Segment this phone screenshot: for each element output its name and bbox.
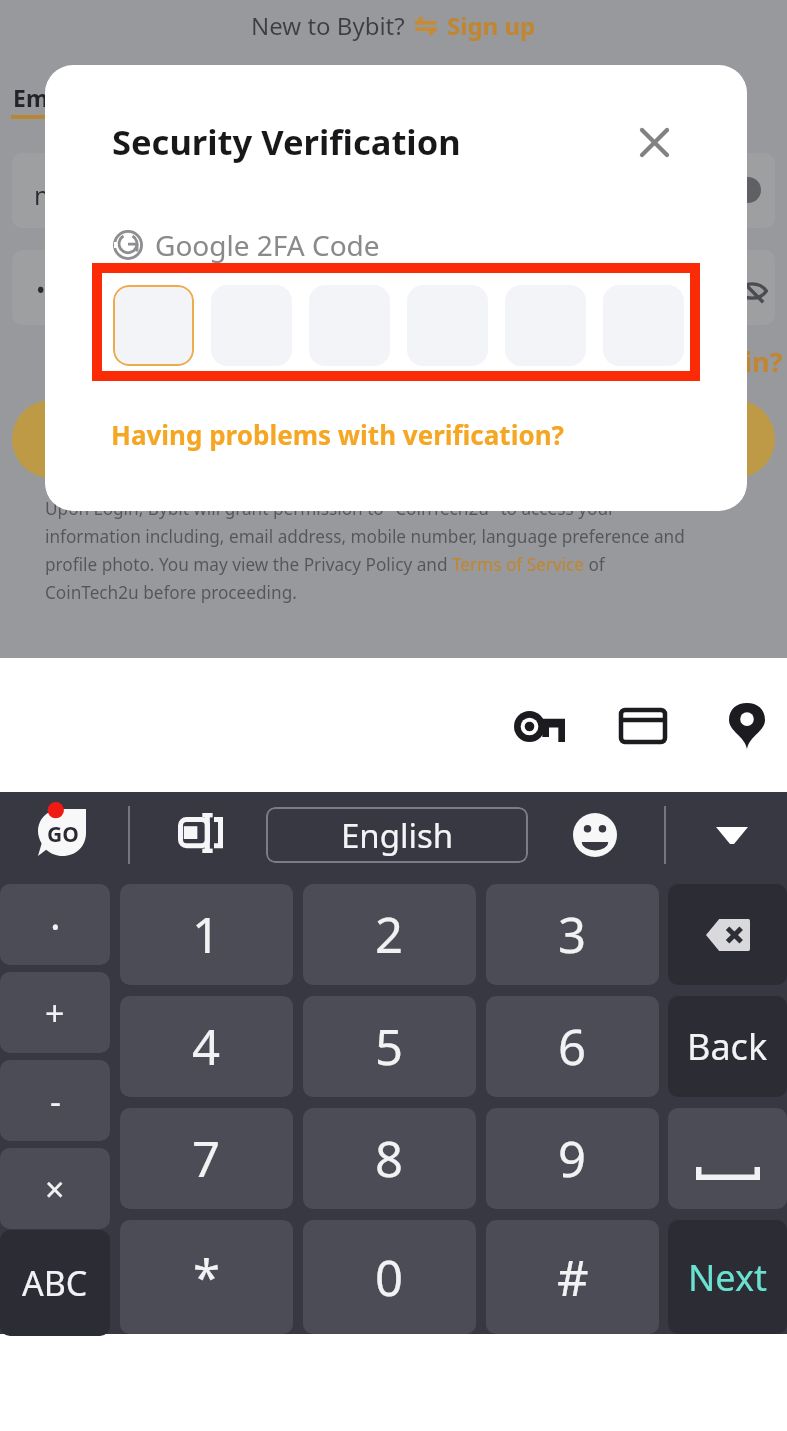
staticText: #: [557, 1244, 589, 1311]
button[interactable]: 4: [120, 996, 293, 1097]
button[interactable]: #: [486, 1220, 659, 1334]
staticText: *: [193, 1244, 220, 1311]
staticText: information including, email address, mo…: [45, 525, 685, 548]
staticText: ABC: [22, 1260, 88, 1306]
staticText: 5: [375, 1013, 404, 1080]
button[interactable]: Next: [668, 1220, 787, 1334]
staticText: Email: [13, 82, 76, 113]
button[interactable]: 6: [486, 996, 659, 1097]
staticText: 2: [375, 901, 404, 968]
button[interactable]: 0: [303, 1220, 476, 1334]
staticText: 8: [375, 1125, 404, 1192]
staticText: 6: [558, 1013, 587, 1080]
button[interactable]: Having problems with verification?: [111, 417, 564, 452]
button[interactable]: 7: [120, 1108, 293, 1209]
button[interactable]: ABC: [0, 1230, 110, 1336]
button[interactable]: ×: [0, 1148, 110, 1229]
staticText: ·: [50, 898, 61, 952]
button[interactable]: Space: [668, 1108, 787, 1209]
button[interactable]: 5: [303, 996, 476, 1097]
button[interactable]: English: [266, 807, 528, 863]
button[interactable]: GO Keyboard: [38, 808, 86, 856]
button[interactable]: -: [0, 1060, 110, 1141]
staticText: n: [34, 178, 50, 212]
staticText: 3: [558, 901, 587, 968]
staticText: Sign up: [447, 9, 536, 42]
button[interactable]: Close: [621, 109, 687, 175]
staticText: 0: [375, 1244, 404, 1311]
button[interactable]: Passwords: [503, 690, 575, 762]
button[interactable]: [113, 285, 194, 366]
staticText: English: [341, 813, 454, 858]
staticText: -: [50, 1078, 61, 1124]
staticText: +: [45, 990, 65, 1036]
button[interactable]: Back: [668, 996, 787, 1097]
staticText: Security Verification: [112, 118, 461, 165]
button[interactable]: Addresses: [711, 690, 783, 762]
button[interactable]: *: [120, 1220, 293, 1334]
staticText: Next: [688, 1253, 767, 1302]
button[interactable]: 2: [303, 884, 476, 985]
button[interactable]: ·: [0, 884, 110, 965]
staticText: Upon Login, Bybit will grant permission …: [45, 497, 616, 520]
button[interactable]: Backspace: [668, 884, 787, 985]
staticText: •: [36, 272, 46, 306]
button[interactable]: 3: [486, 884, 659, 985]
button[interactable]: Emoji: [573, 813, 617, 857]
button[interactable]: Hide keyboard: [716, 825, 748, 844]
button[interactable]: Resize keyboard: [178, 813, 223, 853]
staticText: ×: [45, 1166, 65, 1212]
staticText: Back: [687, 1022, 768, 1071]
staticText: GO: [47, 820, 79, 849]
staticText: profile photo. You may view the Privacy …: [45, 553, 605, 576]
staticText: in?: [744, 343, 783, 380]
button[interactable]: 8: [303, 1108, 476, 1209]
button[interactable]: 1: [120, 884, 293, 985]
button[interactable]: +: [0, 972, 110, 1053]
staticText: 9: [558, 1125, 587, 1192]
button[interactable]: Payment methods: [607, 690, 679, 762]
staticText: Google 2FA Code: [155, 226, 380, 264]
staticText: 1: [192, 901, 221, 968]
staticText: 4: [192, 1013, 221, 1080]
staticText: CoinTech2u before proceeding.: [45, 581, 297, 604]
staticText: 7: [192, 1125, 221, 1192]
button[interactable]: 9: [486, 1108, 659, 1209]
staticText: New to Bybit?: [251, 9, 405, 42]
